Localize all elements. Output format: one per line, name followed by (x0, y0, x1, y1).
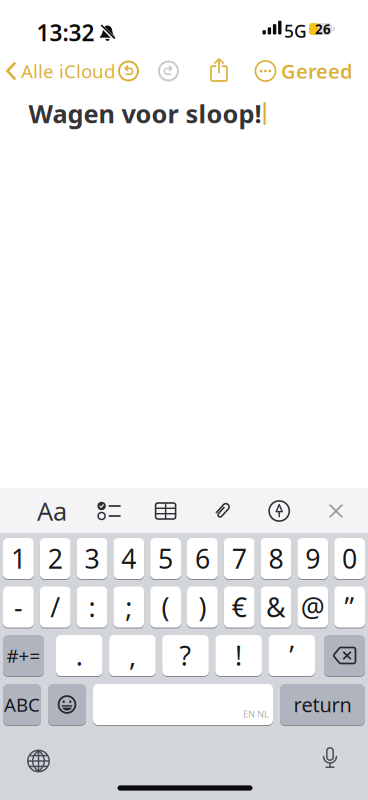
staticText: ! (235, 638, 242, 673)
button[interactable]: Markup (257, 489, 301, 533)
staticText: , (129, 638, 136, 673)
staticText: 1 (11, 541, 26, 576)
button[interactable]: ” (334, 586, 365, 628)
button[interactable]: 9 (297, 537, 328, 579)
button[interactable]: & (261, 586, 291, 628)
staticText: 6 (195, 541, 210, 576)
button[interactable]: Space (93, 683, 273, 725)
staticText: ’ (289, 638, 294, 673)
staticText: 5G (284, 19, 307, 42)
button[interactable]: 4 (113, 537, 144, 579)
button[interactable]: 8 (261, 537, 291, 579)
staticText: 3 (84, 541, 99, 576)
button[interactable]: , (109, 634, 156, 676)
button[interactable]: / (40, 586, 71, 628)
staticText: - (14, 589, 23, 625)
button[interactable]: @ (297, 586, 328, 628)
button[interactable]: Undo (113, 56, 143, 86)
staticText: Gereed (281, 58, 353, 84)
button[interactable]: ! (215, 634, 262, 676)
staticText: 13:32 (36, 17, 94, 47)
button[interactable]: 7 (224, 537, 255, 579)
button[interactable]: ? (162, 634, 209, 676)
staticText: @ (301, 589, 325, 625)
button[interactable]: Next keyboard (20, 743, 56, 779)
button[interactable]: 0 (334, 537, 365, 579)
button[interactable]: Gereed (257, 54, 353, 88)
staticText: : (88, 589, 95, 625)
button[interactable]: Attach (200, 489, 244, 533)
staticText: ? (179, 638, 191, 673)
button[interactable]: return (280, 683, 365, 725)
staticText: / (50, 589, 60, 625)
button[interactable]: ( (150, 586, 181, 628)
staticText: Alle iCloud (21, 59, 115, 83)
button[interactable]: ’ (268, 634, 315, 676)
staticText: 4 (121, 541, 136, 576)
staticText: ( (162, 589, 170, 625)
staticText: 26 (315, 20, 331, 38)
button[interactable]: Share (206, 56, 232, 84)
staticText: EN NL (243, 708, 269, 720)
button[interactable]: Back (6, 54, 156, 88)
button[interactable]: Delete (324, 634, 365, 676)
button[interactable]: Checklist (87, 489, 131, 533)
button[interactable]: Table (144, 489, 188, 533)
button[interactable]: € (224, 586, 255, 628)
button[interactable]: ABC (3, 683, 41, 725)
button[interactable]: Dictate (318, 744, 342, 774)
staticText: 0 (342, 541, 357, 576)
staticText: ) (198, 589, 206, 625)
staticText: #+= (6, 643, 40, 668)
button[interactable]: - (3, 586, 34, 628)
staticText: 2 (48, 541, 63, 576)
button[interactable]: 3 (77, 537, 107, 579)
button[interactable]: #+= (3, 634, 44, 676)
staticText: . (76, 638, 83, 673)
button[interactable]: Dismiss keyboard toolbar (314, 489, 358, 533)
staticText: 9 (305, 541, 320, 576)
staticText: 5 (158, 541, 173, 576)
button[interactable]: Emoji (48, 683, 86, 725)
button[interactable]: 6 (187, 537, 218, 579)
button[interactable]: ) (187, 586, 218, 628)
button[interactable]: Redo (153, 56, 183, 86)
staticText: Aa (37, 494, 67, 528)
button[interactable]: 1 (3, 537, 34, 579)
staticText: 7 (232, 541, 247, 576)
staticText: ” (345, 589, 355, 625)
staticText: & (266, 589, 286, 625)
button[interactable]: ; (113, 586, 144, 628)
staticText: € (232, 589, 247, 625)
button[interactable]: More (250, 56, 280, 86)
staticText: ; (125, 589, 132, 625)
staticText: ABC (4, 692, 40, 717)
button[interactable]: : (77, 586, 107, 628)
button[interactable]: . (56, 634, 103, 676)
staticText: Wagen voor sloop! (28, 97, 261, 130)
button[interactable]: Format (30, 489, 74, 533)
button[interactable]: 5 (150, 537, 181, 579)
staticText: return (293, 691, 351, 718)
button[interactable]: 2 (40, 537, 71, 579)
staticText: 8 (268, 541, 283, 576)
